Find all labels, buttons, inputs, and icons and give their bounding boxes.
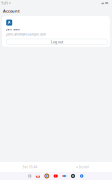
button[interactable]: Gmail	[36, 174, 40, 178]
staticText: 9:41	[1, 0, 8, 6]
button[interactable]: Profile	[71, 174, 75, 178]
staticText: Install	[79, 165, 89, 169]
button[interactable]: Install	[76, 165, 89, 169]
staticText: Sat 10:44	[22, 165, 37, 169]
button[interactable]: YouTube	[54, 174, 58, 178]
button[interactable]: Gemini	[62, 174, 66, 178]
button[interactable]: All apps	[28, 174, 31, 178]
staticText: Account	[3, 8, 20, 14]
staticText: Log out	[51, 39, 63, 44]
button[interactable]: Log out	[6, 39, 108, 45]
button[interactable]: Chrome	[44, 173, 49, 178]
staticText: John Smith	[6, 28, 20, 31]
button[interactable]: Files	[79, 174, 84, 178]
staticText: john.smith@example.com	[6, 32, 46, 36]
